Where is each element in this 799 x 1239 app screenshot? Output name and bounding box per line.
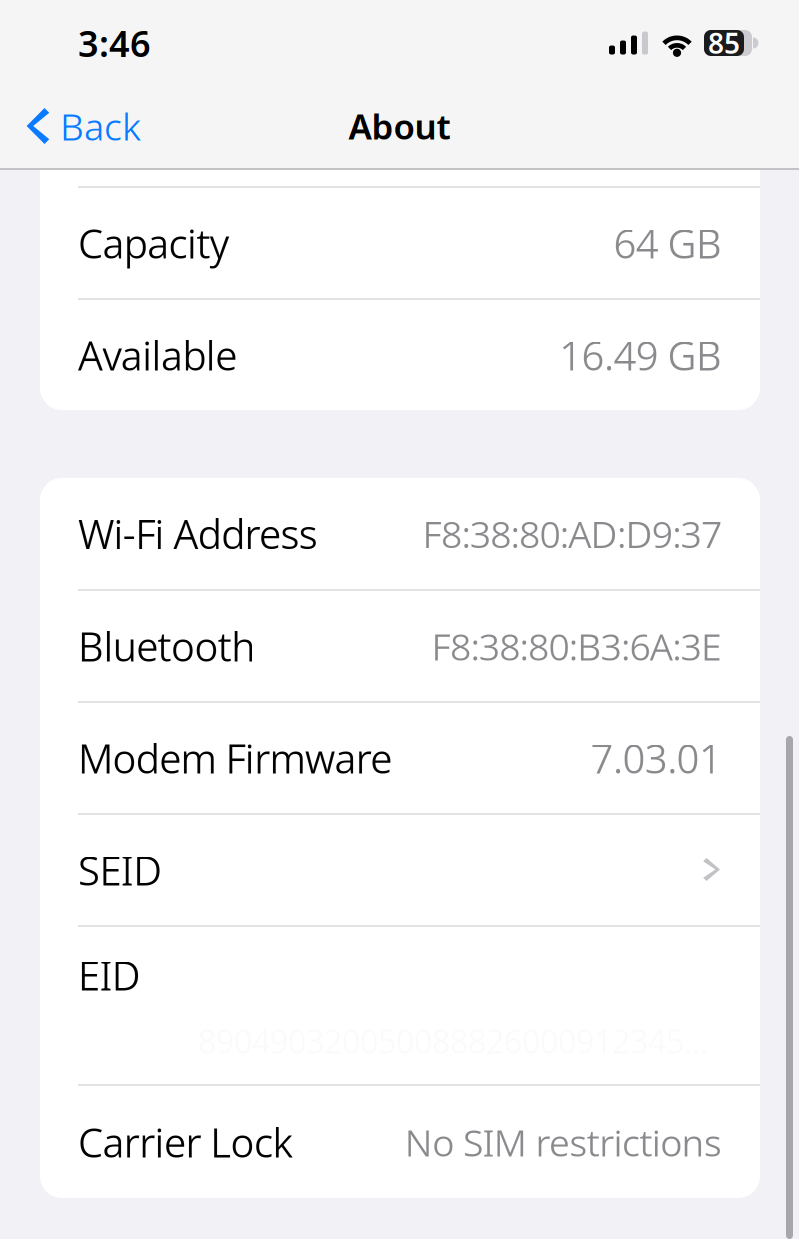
staticText: Wi-Fi Address <box>78 506 318 561</box>
staticText: 16.49 GB <box>559 328 722 382</box>
staticText: 3:46 <box>78 18 151 67</box>
button[interactable]: SEID <box>40 815 760 925</box>
staticText: Capacity <box>78 216 229 270</box>
staticText: Bluetooth <box>78 619 255 673</box>
button[interactable]: Capacity <box>40 188 760 298</box>
button[interactable]: EID <box>40 927 760 1084</box>
staticText: F8:38:80:AD:D9:37 <box>423 508 722 559</box>
staticText: EID <box>78 948 141 1002</box>
button[interactable]: Modem Firmware <box>40 703 760 813</box>
staticText: 85 <box>708 24 740 62</box>
button[interactable]: Wi-Fi Address <box>40 478 760 589</box>
staticText: 7.03.01 <box>591 731 722 785</box>
staticText: Available <box>78 328 237 382</box>
staticText: Carrier Lock <box>78 1115 292 1169</box>
staticText: About <box>348 102 450 150</box>
staticText: 64 GB <box>613 216 722 270</box>
button[interactable]: Back <box>0 85 155 167</box>
staticText: Back <box>60 101 141 151</box>
staticText: F8:38:80:B3:6A:3E <box>432 621 722 671</box>
button[interactable]: Bluetooth <box>40 591 760 701</box>
staticText: SEID <box>78 843 162 897</box>
staticText: Modem Firmware <box>78 731 392 785</box>
button[interactable]: Carrier Lock <box>40 1086 760 1198</box>
staticText: No SIM restrictions <box>405 1117 722 1167</box>
button[interactable]: Available <box>40 300 760 410</box>
